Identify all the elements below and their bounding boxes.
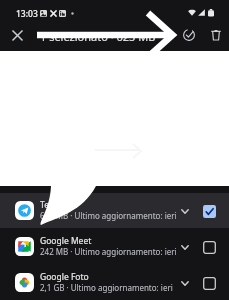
button[interactable]: Delete [204, 23, 228, 47]
staticText: Google Foto [40, 271, 89, 283]
button[interactable]: Expand [175, 274, 194, 293]
staticText: 625 MB · Ultimo aggiornamento: ieri [40, 210, 177, 221]
staticText: 2,1 GB · Ultimo aggiornamento: ieri [40, 282, 173, 293]
button[interactable]: Deselect [200, 202, 219, 221]
staticText: 1 selezionato · 625 MB [40, 29, 156, 44]
button[interactable]: Telegram [0, 193, 229, 228]
button[interactable]: Select [200, 274, 219, 293]
button[interactable]: Google Foto [0, 265, 229, 300]
staticText: Telegram [40, 199, 78, 211]
staticText: 13:03 [16, 8, 38, 20]
button[interactable]: Select [200, 238, 219, 257]
button[interactable]: Select all [177, 23, 201, 47]
button[interactable]: Close [5, 23, 29, 47]
staticText: Google Meet [40, 235, 92, 247]
button[interactable]: Google Meet [0, 229, 229, 264]
button[interactable]: Expand [175, 238, 194, 257]
button[interactable]: Expand [175, 202, 194, 221]
staticText: 242 MB · Ultimo aggiornamento: ieri [40, 246, 177, 257]
